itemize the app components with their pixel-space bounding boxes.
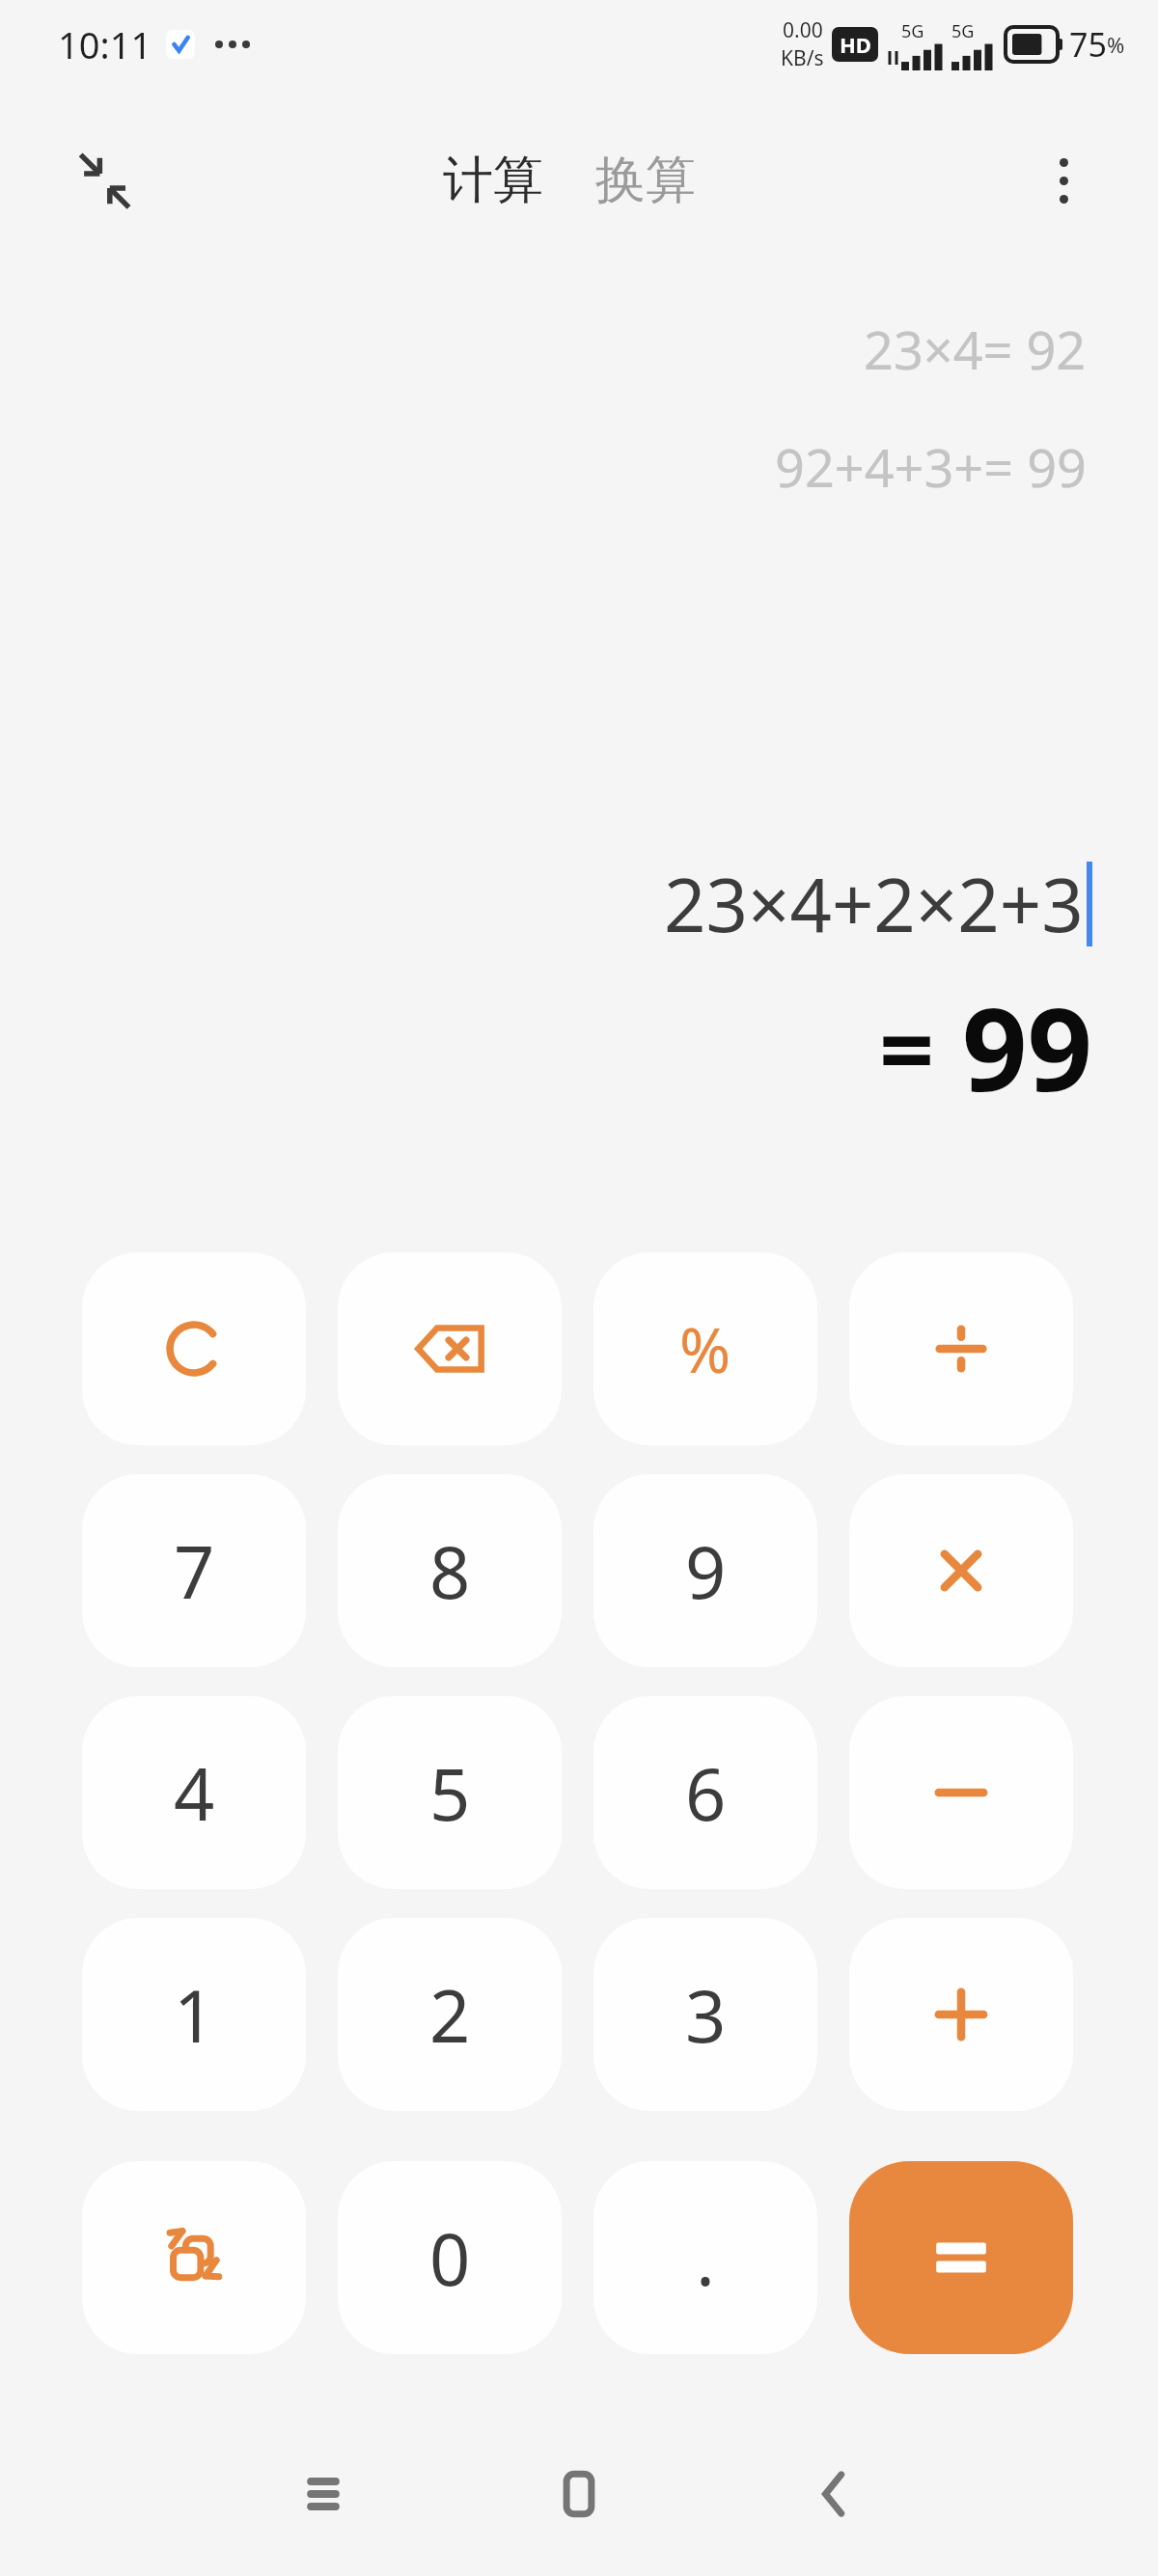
staticText: 92+4+3+= 99 [775,431,1087,503]
button[interactable]: 2 [338,1918,562,2111]
staticText: 0 [429,2209,471,2307]
staticText: 1 [174,1966,215,2064]
staticText: 23×4= 92 [864,314,1087,385]
staticText: 6 [685,1744,727,1842]
staticText: 8 [429,1522,471,1620]
staticText: 换算 [595,149,696,212]
staticText: 2 [429,1966,471,2064]
button[interactable]: Divide [849,1252,1073,1445]
staticText: 75 [1069,22,1107,67]
button[interactable]: Collapse [56,132,152,229]
staticText: 99 [962,970,1092,1125]
button[interactable]: 5 [338,1696,562,1889]
button[interactable]: 换算 [586,139,705,222]
button[interactable]: 3 [593,1918,817,2111]
staticText: KB/s [781,44,824,72]
staticText: 计算 [443,149,543,212]
staticText: 0.00 [783,16,823,44]
staticText: 5G [951,19,975,43]
button[interactable]: Clear [82,1252,306,1445]
staticText: = [879,982,935,1113]
button[interactable]: 7 [82,1474,306,1667]
staticText: 3 [685,1966,727,2064]
staticText: % [1107,30,1125,59]
staticText: 7 [174,1522,215,1620]
staticText: 10:11 [58,19,152,69]
staticText: . [696,2209,715,2307]
button[interactable]: % [593,1252,817,1445]
staticText: 9 [685,1522,727,1620]
button[interactable]: More options [1017,134,1110,227]
button[interactable]: Minus [849,1696,1073,1889]
staticText: 5G [901,19,924,43]
button[interactable]: 9 [593,1474,817,1667]
staticText: HD [840,30,871,59]
button[interactable]: 6 [593,1696,817,1889]
button[interactable]: 0 [338,2161,562,2354]
staticText: 23×4+2×2+3 [664,854,1084,954]
button[interactable]: Handwriting input [82,2161,306,2354]
button[interactable]: Home [521,2436,637,2552]
button[interactable]: Equals [849,2161,1073,2354]
button[interactable]: . [593,2161,817,2354]
button[interactable]: Recent apps [265,2436,381,2552]
button[interactable]: 1 [82,1918,306,2111]
button[interactable]: Multiply [849,1474,1073,1667]
staticText: 4 [174,1744,215,1842]
button[interactable]: 4 [82,1696,306,1889]
staticText: % [679,1307,731,1391]
button[interactable]: 8 [338,1474,562,1667]
button[interactable]: Plus [849,1918,1073,2111]
button[interactable]: Backspace [338,1252,562,1445]
button[interactable]: 计算 [433,139,553,222]
button[interactable]: Back [777,2436,893,2552]
staticText: 5 [429,1744,471,1842]
